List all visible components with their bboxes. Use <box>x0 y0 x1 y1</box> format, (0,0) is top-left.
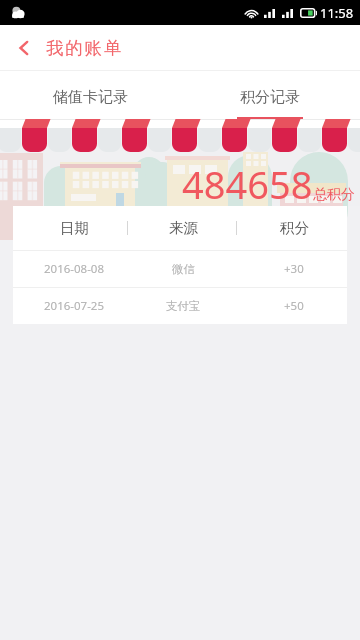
staticText: +30 <box>284 261 304 277</box>
staticText: 积分 <box>280 219 309 237</box>
button[interactable]: 2016-08-08 <box>13 251 347 287</box>
staticText: 日期 <box>60 219 89 237</box>
button[interactable]: 2016-07-25 <box>13 288 347 324</box>
staticText: 积分记录 <box>240 88 300 107</box>
staticText: 微信 <box>172 262 195 276</box>
staticText: 2016-08-08 <box>44 261 105 277</box>
staticText: 484658 <box>182 158 313 210</box>
staticText: 储值卡记录 <box>53 88 128 107</box>
button[interactable]: 积分记录 <box>180 71 360 119</box>
staticText: 支付宝 <box>166 299 201 313</box>
staticText: 2016-07-25 <box>44 298 105 314</box>
button[interactable]: Back <box>16 25 124 71</box>
staticText: 总积分 <box>313 186 355 204</box>
button[interactable]: 储值卡记录 <box>0 71 180 119</box>
other: Back <box>16 40 32 56</box>
staticText: 来源 <box>169 219 198 237</box>
staticText: 我的账单 <box>46 37 124 59</box>
staticText: +50 <box>284 298 304 314</box>
staticText: 11:58 <box>320 4 354 22</box>
